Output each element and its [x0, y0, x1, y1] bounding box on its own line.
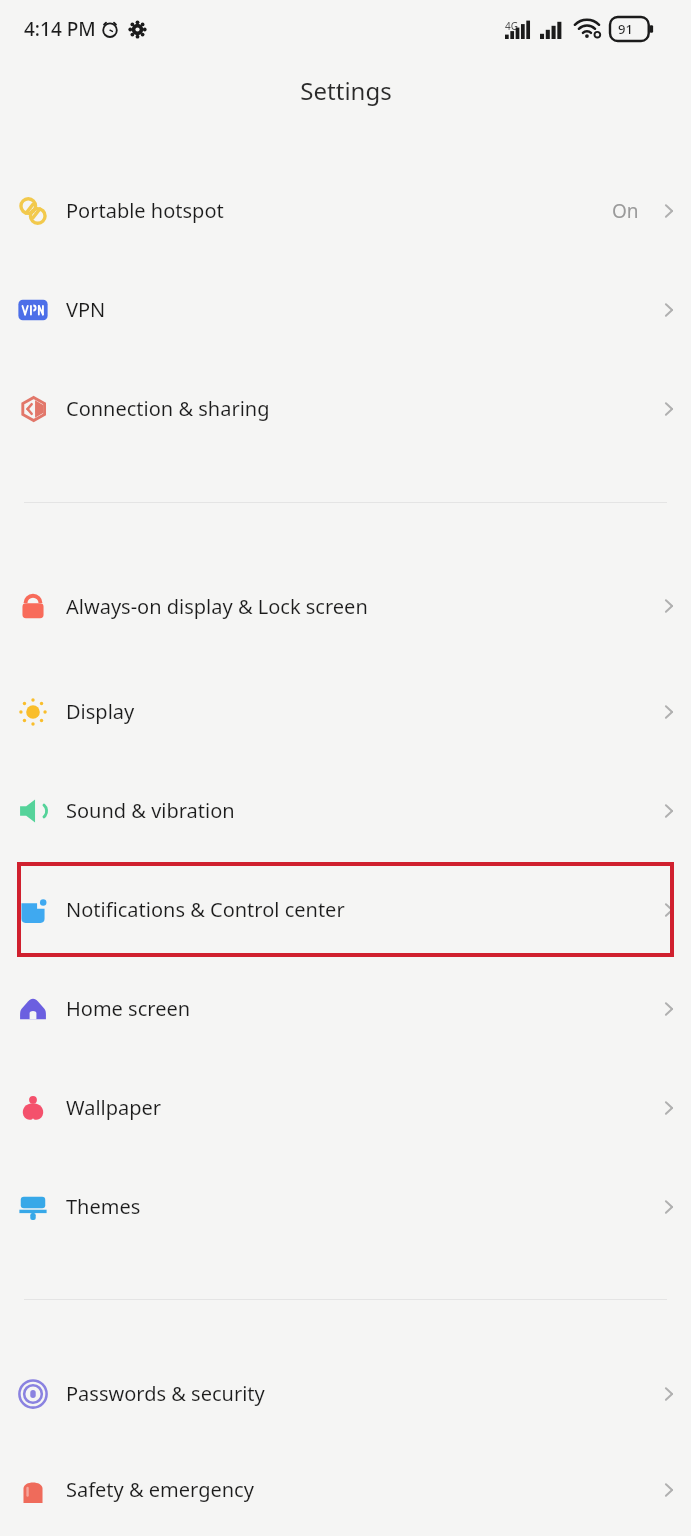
- staticText: Passwords & security: [66, 1380, 635, 1407]
- staticText: Connection & sharing: [66, 395, 635, 422]
- staticText: VPN: [66, 296, 635, 323]
- staticText: 91: [618, 20, 633, 38]
- button[interactable]: Always-on display & Lock screen: [0, 550, 691, 662]
- button[interactable]: Portable hotspot: [0, 161, 691, 260]
- staticText: Display: [66, 698, 635, 725]
- staticText: Notifications & Control center: [66, 896, 635, 923]
- button[interactable]: Wallpaper: [0, 1058, 691, 1157]
- staticText: Themes: [66, 1193, 635, 1220]
- staticText: Safety & emergency: [66, 1476, 635, 1503]
- button[interactable]: VPN: [0, 260, 691, 359]
- button[interactable]: Sound & vibration: [0, 761, 691, 860]
- staticText: Always-on display & Lock screen: [66, 593, 635, 620]
- staticText: Home screen: [66, 995, 635, 1022]
- staticText: 4:14 PM: [24, 16, 96, 42]
- staticText: On: [612, 198, 639, 224]
- staticText: Portable hotspot: [66, 197, 600, 224]
- button[interactable]: Display: [0, 662, 691, 761]
- staticText: Wallpaper: [66, 1094, 635, 1121]
- button[interactable]: Connection & sharing: [0, 359, 691, 458]
- staticText: Sound & vibration: [66, 797, 635, 824]
- button[interactable]: Passwords & security: [0, 1344, 691, 1443]
- button[interactable]: Home screen: [0, 959, 691, 1058]
- button[interactable]: Notifications & Control center: [0, 860, 691, 959]
- button[interactable]: Safety & emergency: [0, 1443, 691, 1536]
- button[interactable]: Themes: [0, 1157, 691, 1256]
- staticText: 4G: [505, 19, 518, 33]
- staticText: Settings: [300, 74, 392, 107]
